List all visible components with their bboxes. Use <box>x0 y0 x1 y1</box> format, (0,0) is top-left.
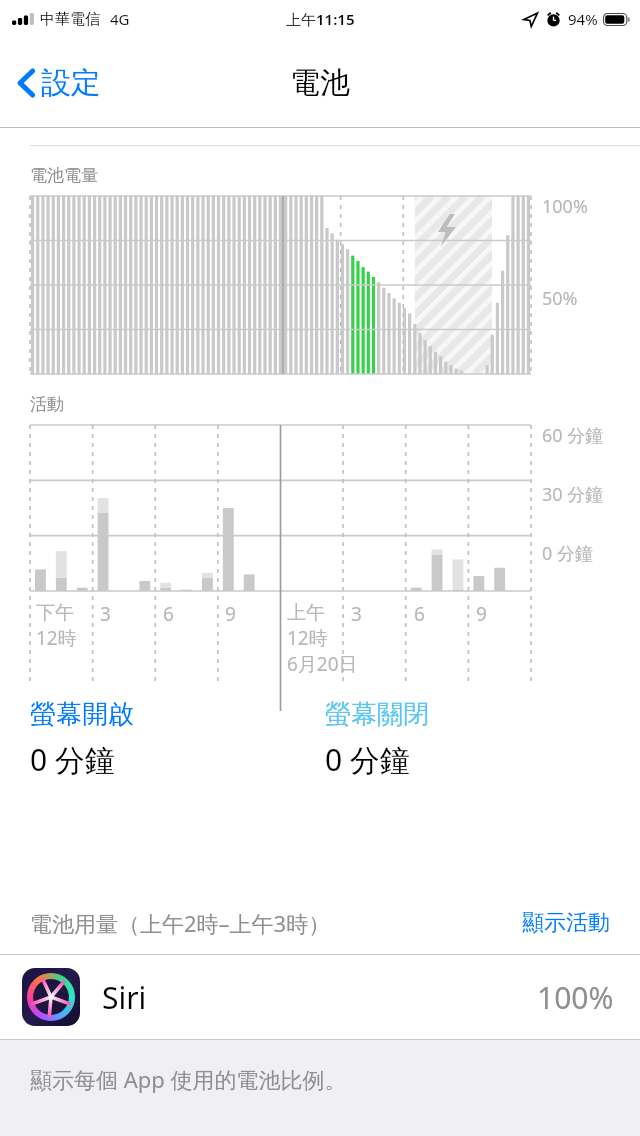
other: Back <box>18 68 35 98</box>
staticText: Siri <box>102 977 147 1018</box>
button[interactable]: Siri <box>0 955 640 1039</box>
staticText: 0 分鐘 <box>542 541 593 566</box>
staticText: 6 <box>414 601 425 627</box>
staticText: 6月20日 <box>287 651 358 677</box>
button[interactable]: Back <box>14 58 105 108</box>
staticText: 顯示活動 <box>522 909 610 937</box>
staticText: 30 分鐘 <box>542 482 604 507</box>
staticText: 上午 <box>287 601 325 625</box>
staticText: 60 分鐘 <box>542 423 604 448</box>
staticText: 電池電量 <box>30 165 98 186</box>
staticText: 12時 <box>287 625 328 651</box>
staticText: 94% <box>568 9 598 29</box>
staticText: 100% <box>542 194 588 219</box>
button[interactable]: 顯示活動 <box>522 909 610 937</box>
staticText: 6 <box>163 601 174 627</box>
staticText: 9 <box>476 601 487 627</box>
staticText: 設定 <box>41 64 101 102</box>
staticText: 50% <box>542 286 578 311</box>
staticText: 中華電信 <box>40 10 100 29</box>
staticText: 上午11:15 <box>286 9 355 29</box>
staticText: 4G <box>110 9 130 29</box>
staticText: 0 分鐘 <box>325 739 410 780</box>
staticText: 9 <box>225 601 236 627</box>
staticText: 電池用量（上午2時–上午3時） <box>30 908 331 938</box>
staticText: 0 分鐘 <box>30 739 115 780</box>
staticText: 電池 <box>290 64 350 102</box>
staticText: 活動 <box>30 394 64 415</box>
staticText: 12時 <box>36 625 77 651</box>
staticText: 3 <box>100 601 111 627</box>
staticText: 下午 <box>36 601 74 625</box>
staticText: 螢幕關閉 <box>325 698 429 731</box>
staticText: 3 <box>351 601 362 627</box>
staticText: 顯示每個 App 使用的電池比例。 <box>30 1064 347 1094</box>
staticText: 100% <box>537 977 614 1018</box>
staticText: 螢幕開啟 <box>30 698 134 731</box>
